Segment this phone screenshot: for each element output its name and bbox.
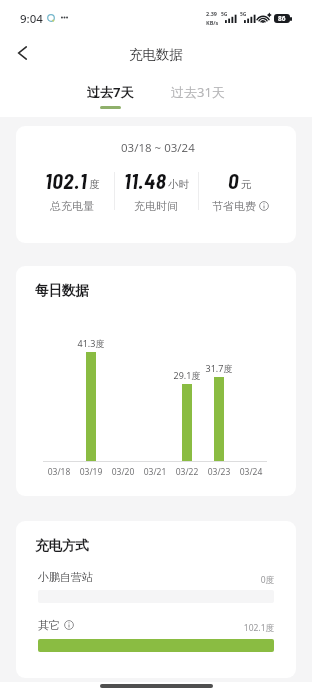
staticText: 元 <box>241 178 252 191</box>
staticText: 其它 <box>38 618 60 632</box>
staticText: 小时 <box>168 178 189 191</box>
staticText: KB/s <box>206 19 219 26</box>
staticText: 31.7度 <box>199 362 239 374</box>
button[interactable]: 过去31天 <box>169 80 227 104</box>
staticText: 0度 <box>214 574 274 586</box>
staticText: 0 <box>228 168 240 193</box>
staticText: 03/18 ~ 03/24 <box>121 140 195 156</box>
staticText: 102.1度 <box>214 622 274 634</box>
staticText: 03/21 <box>135 466 175 478</box>
button[interactable]: 过去7天 <box>83 80 138 110</box>
staticText: 度 <box>89 178 100 191</box>
staticText: 03/23 <box>199 466 239 478</box>
staticText: 5G <box>221 11 228 18</box>
staticText: 41.3度 <box>71 337 111 349</box>
staticText: 03/24 <box>231 466 271 478</box>
staticText: 充电时间 <box>134 199 178 213</box>
staticText: 03/20 <box>103 466 143 478</box>
staticText: 2.39 <box>206 10 217 17</box>
staticText: 86 <box>278 14 286 23</box>
staticText: 03/18 <box>39 466 79 478</box>
staticText: 小鹏自营站 <box>38 570 93 584</box>
staticText: 过去7天 <box>87 83 134 101</box>
staticText: 5G <box>240 11 247 18</box>
staticText: 过去31天 <box>171 83 225 101</box>
staticText: 03/19 <box>71 466 111 478</box>
staticText: 充电方式 <box>35 537 89 554</box>
staticText: 总充电量 <box>50 199 94 213</box>
button[interactable]: About other charging <box>64 620 74 630</box>
button[interactable]: Back <box>6 37 38 69</box>
staticText: 29.1度 <box>167 369 207 381</box>
staticText: 11.48 <box>124 168 167 193</box>
staticText: 充电数据 <box>129 46 183 63</box>
staticText: 102.1 <box>45 168 88 193</box>
staticText: 03/22 <box>167 466 207 478</box>
staticText: 9:04 <box>20 11 43 27</box>
button[interactable]: About saved electricity cost <box>259 201 269 211</box>
staticText: 每日数据 <box>35 282 89 299</box>
staticText: 节省电费 <box>212 199 256 213</box>
